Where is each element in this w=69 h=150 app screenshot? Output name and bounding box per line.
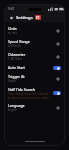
button[interactable]: PZ xyxy=(35,15,41,20)
button[interactable]: Toggle on xyxy=(53,66,61,70)
staticText: Language xyxy=(8,103,25,108)
staticText: Units xyxy=(8,26,17,31)
button[interactable]: More info xyxy=(55,28,61,34)
staticText: Graph xyxy=(8,79,16,83)
button[interactable]: Units xyxy=(5,24,64,37)
staticText: Half Tide Search xyxy=(8,87,35,92)
staticText: Odometer xyxy=(8,52,26,57)
button[interactable]: Trigger At xyxy=(5,72,64,85)
staticText: Speed Range xyxy=(8,39,30,44)
button[interactable]: Half Tide Search xyxy=(5,85,64,101)
button[interactable]: More info xyxy=(55,76,61,82)
staticText: Tides day searches are scanned by the ti… xyxy=(8,92,51,99)
button[interactable]: Language xyxy=(5,101,64,114)
staticText: Auto Start xyxy=(8,65,25,70)
staticText: 1,247.8 km xyxy=(8,57,22,61)
button[interactable]: Back xyxy=(8,14,15,21)
button[interactable]: Speed Range xyxy=(5,37,64,50)
staticText: 9:41 xyxy=(8,7,15,11)
button[interactable]: Toggle on xyxy=(53,91,61,95)
staticText: PZ xyxy=(36,16,40,20)
button[interactable]: Odometer xyxy=(5,50,64,63)
button[interactable]: Auto Start xyxy=(5,63,64,72)
staticText: m, m/s xyxy=(8,31,17,35)
staticText: 0-60 km/h xyxy=(8,44,21,48)
button[interactable]: More info xyxy=(55,54,61,60)
staticText: English xyxy=(8,108,18,112)
staticText: Trigger At xyxy=(8,74,25,79)
button[interactable]: More info xyxy=(55,41,61,47)
staticText: Settings xyxy=(16,15,33,21)
button[interactable]: More info xyxy=(55,105,61,111)
